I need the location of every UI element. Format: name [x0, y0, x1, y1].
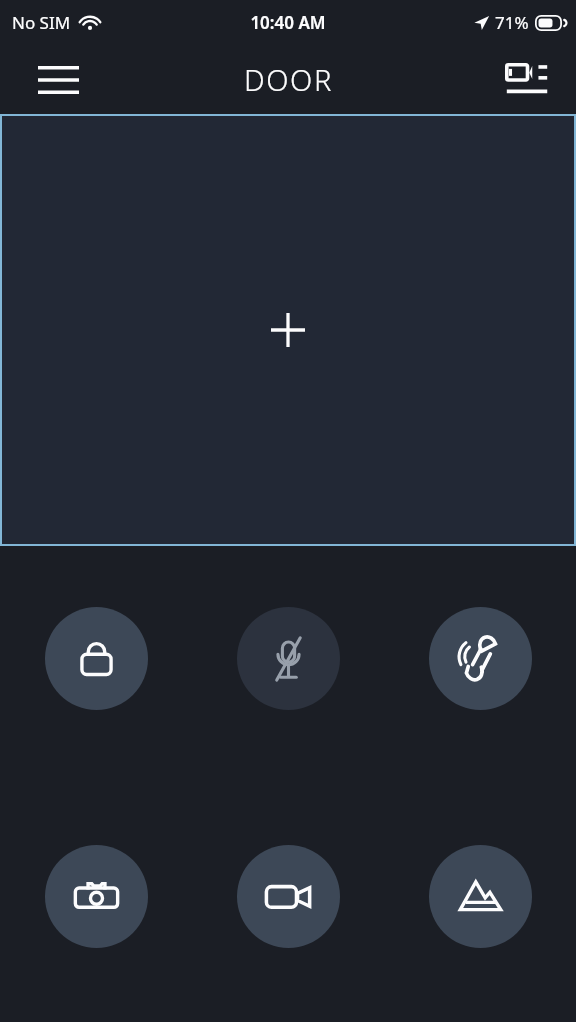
- button[interactable]: Menu: [28, 54, 88, 106]
- button[interactable]: Add camera: [0, 114, 576, 546]
- button[interactable]: Take photo: [45, 845, 148, 948]
- button[interactable]: Video settings: [498, 54, 556, 106]
- button[interactable]: Record video: [237, 845, 340, 948]
- staticText: 71%: [495, 11, 529, 34]
- button[interactable]: Microphone muted: [237, 607, 340, 710]
- staticText: No SIM: [12, 11, 71, 34]
- staticText: DOOR: [244, 60, 333, 99]
- button[interactable]: Unlock door: [45, 607, 148, 710]
- button[interactable]: Answer call: [429, 607, 532, 710]
- button[interactable]: Gallery: [429, 845, 532, 948]
- staticText: 10:40 AM: [250, 11, 326, 34]
